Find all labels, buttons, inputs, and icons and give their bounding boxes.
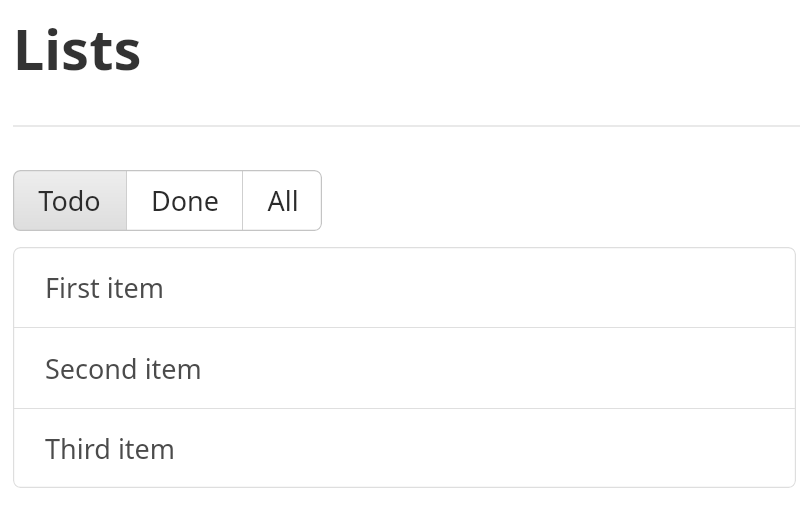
button[interactable]: Second item — [13, 328, 796, 408]
button[interactable]: First item — [13, 247, 796, 327]
button[interactable]: Done — [127, 170, 242, 231]
button[interactable]: Third item — [13, 409, 796, 488]
button[interactable]: All — [243, 170, 322, 231]
staticText: First item — [45, 269, 165, 306]
button[interactable]: Todo — [13, 170, 126, 231]
staticText: Second item — [45, 350, 202, 387]
staticText: Done — [151, 182, 219, 219]
staticText: Todo — [38, 182, 101, 219]
staticText: Lists — [13, 10, 142, 86]
staticText: All — [267, 182, 299, 219]
staticText: Third item — [45, 430, 176, 467]
